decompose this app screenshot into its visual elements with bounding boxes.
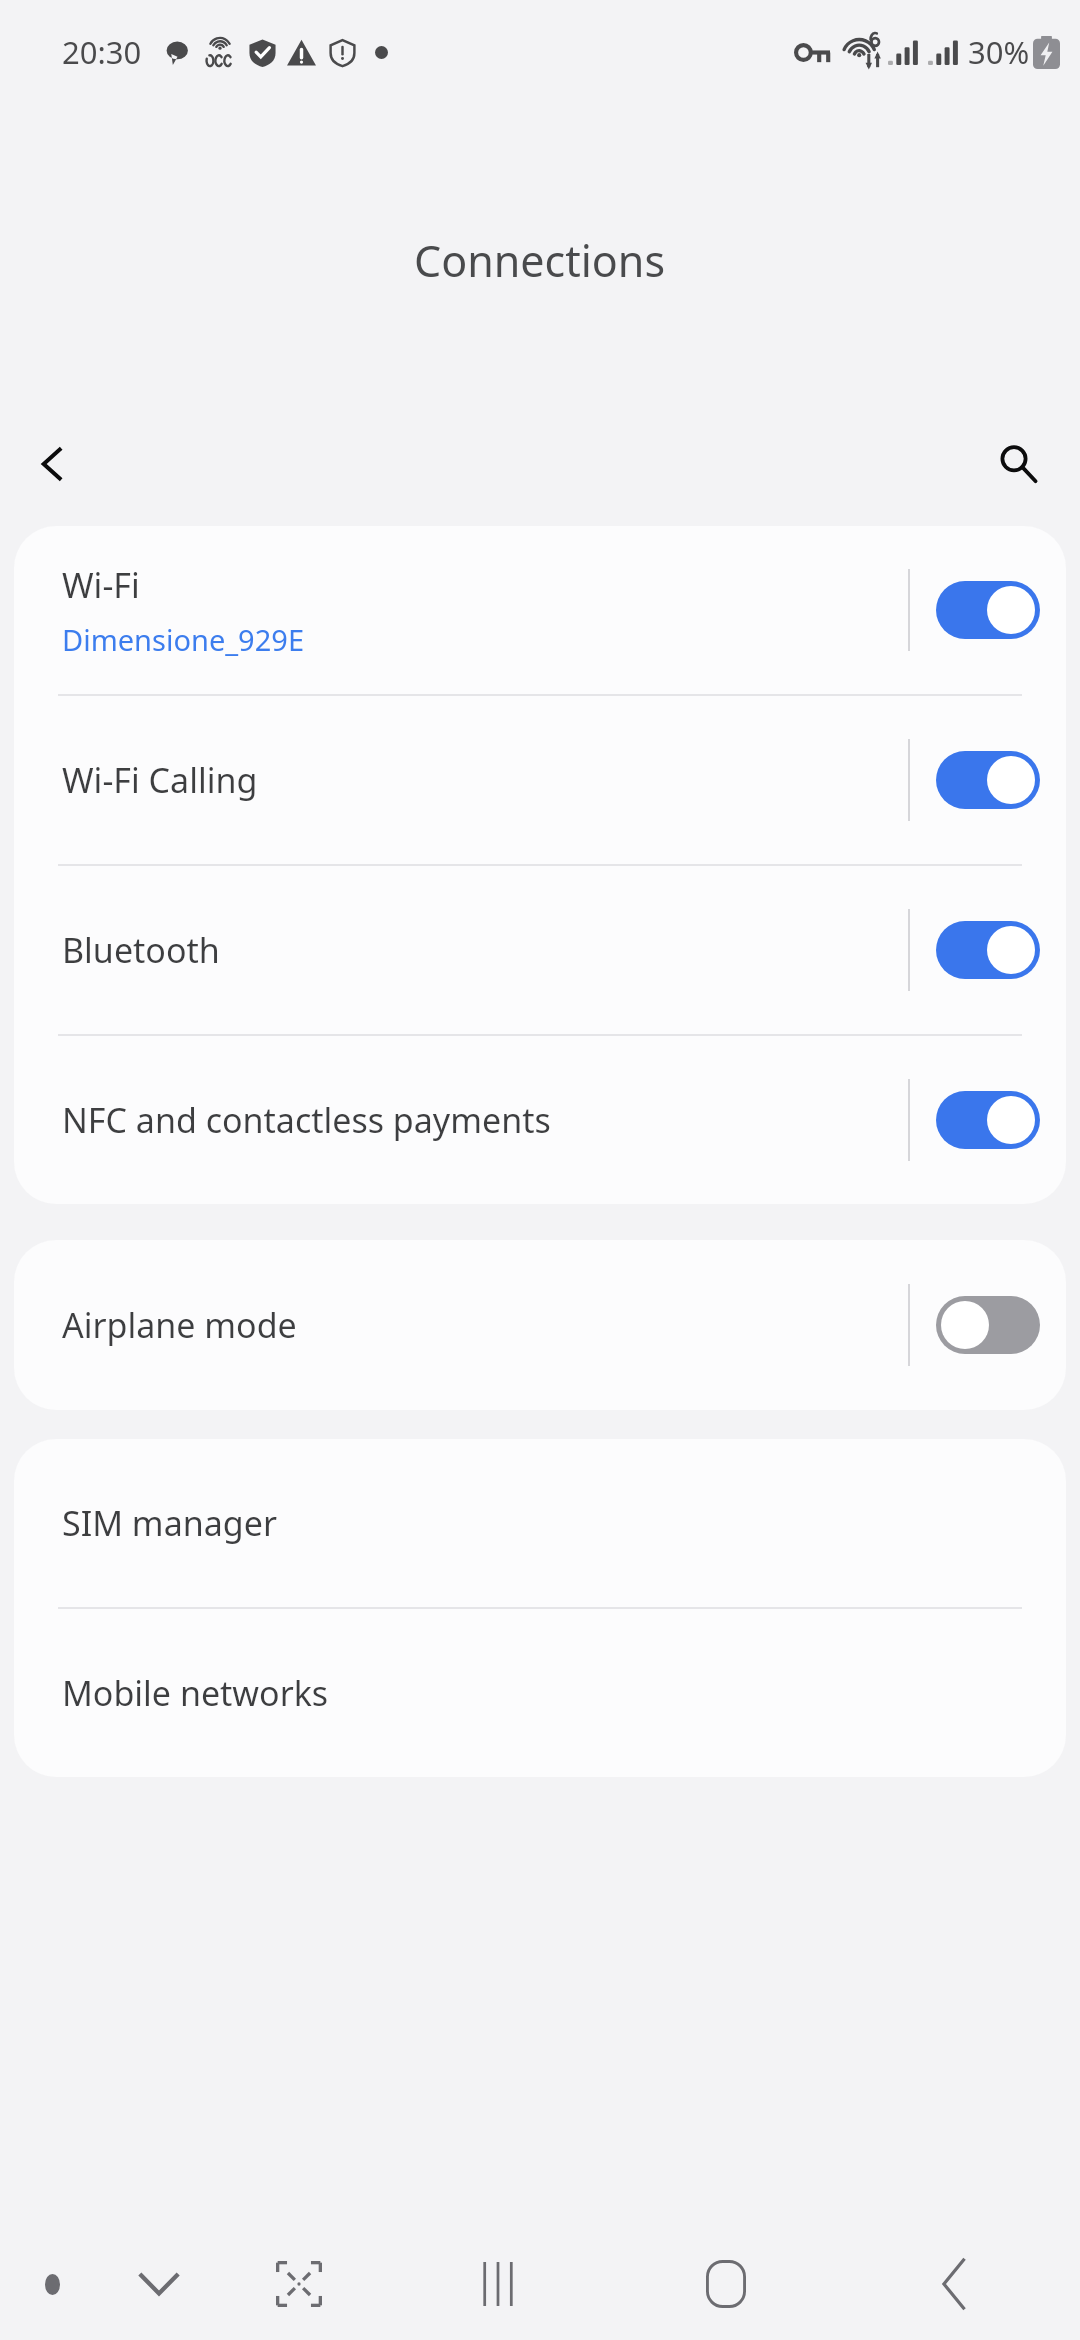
staticText: Mobile networks — [62, 1670, 329, 1716]
button[interactable]: Bluetooth — [14, 866, 1066, 1034]
button[interactable]: One-handed mode — [214, 2228, 384, 2340]
button[interactable]: Back — [840, 2228, 1068, 2340]
button[interactable]: On — [936, 921, 1040, 979]
button[interactable]: On — [936, 751, 1040, 809]
button[interactable]: Wi-Fi — [14, 526, 1066, 694]
staticText: SIM manager — [62, 1500, 277, 1546]
other: Indicator — [0, 2228, 104, 2340]
staticText: Connections — [414, 231, 666, 290]
button[interactable]: Wi-Fi Calling — [14, 696, 1066, 864]
button[interactable]: On — [936, 581, 1040, 639]
staticText: 20:30 — [62, 31, 142, 73]
staticText: Bluetooth — [62, 927, 220, 973]
staticText: NFC and contactless payments — [62, 1097, 551, 1143]
button[interactable]: Airplane mode — [14, 1240, 1066, 1410]
staticText: 30% — [968, 31, 1030, 73]
button[interactable]: Navigate up — [14, 426, 90, 502]
button[interactable]: Search — [980, 426, 1056, 502]
staticText: Dimensione_929E — [62, 620, 305, 659]
button[interactable]: Off — [936, 1296, 1040, 1354]
button[interactable]: Recent apps — [384, 2228, 612, 2340]
button[interactable]: On — [936, 1091, 1040, 1149]
button[interactable]: Home — [612, 2228, 840, 2340]
staticText: Airplane mode — [62, 1302, 297, 1348]
button[interactable]: NFC and contactless payments — [14, 1036, 1066, 1204]
staticText: Wi-Fi — [62, 562, 140, 608]
button[interactable]: Mobile networks — [14, 1609, 1066, 1777]
staticText: Wi-Fi Calling — [62, 757, 258, 803]
button[interactable]: SIM manager — [14, 1439, 1066, 1607]
button[interactable]: Hide keyboard — [104, 2228, 214, 2340]
